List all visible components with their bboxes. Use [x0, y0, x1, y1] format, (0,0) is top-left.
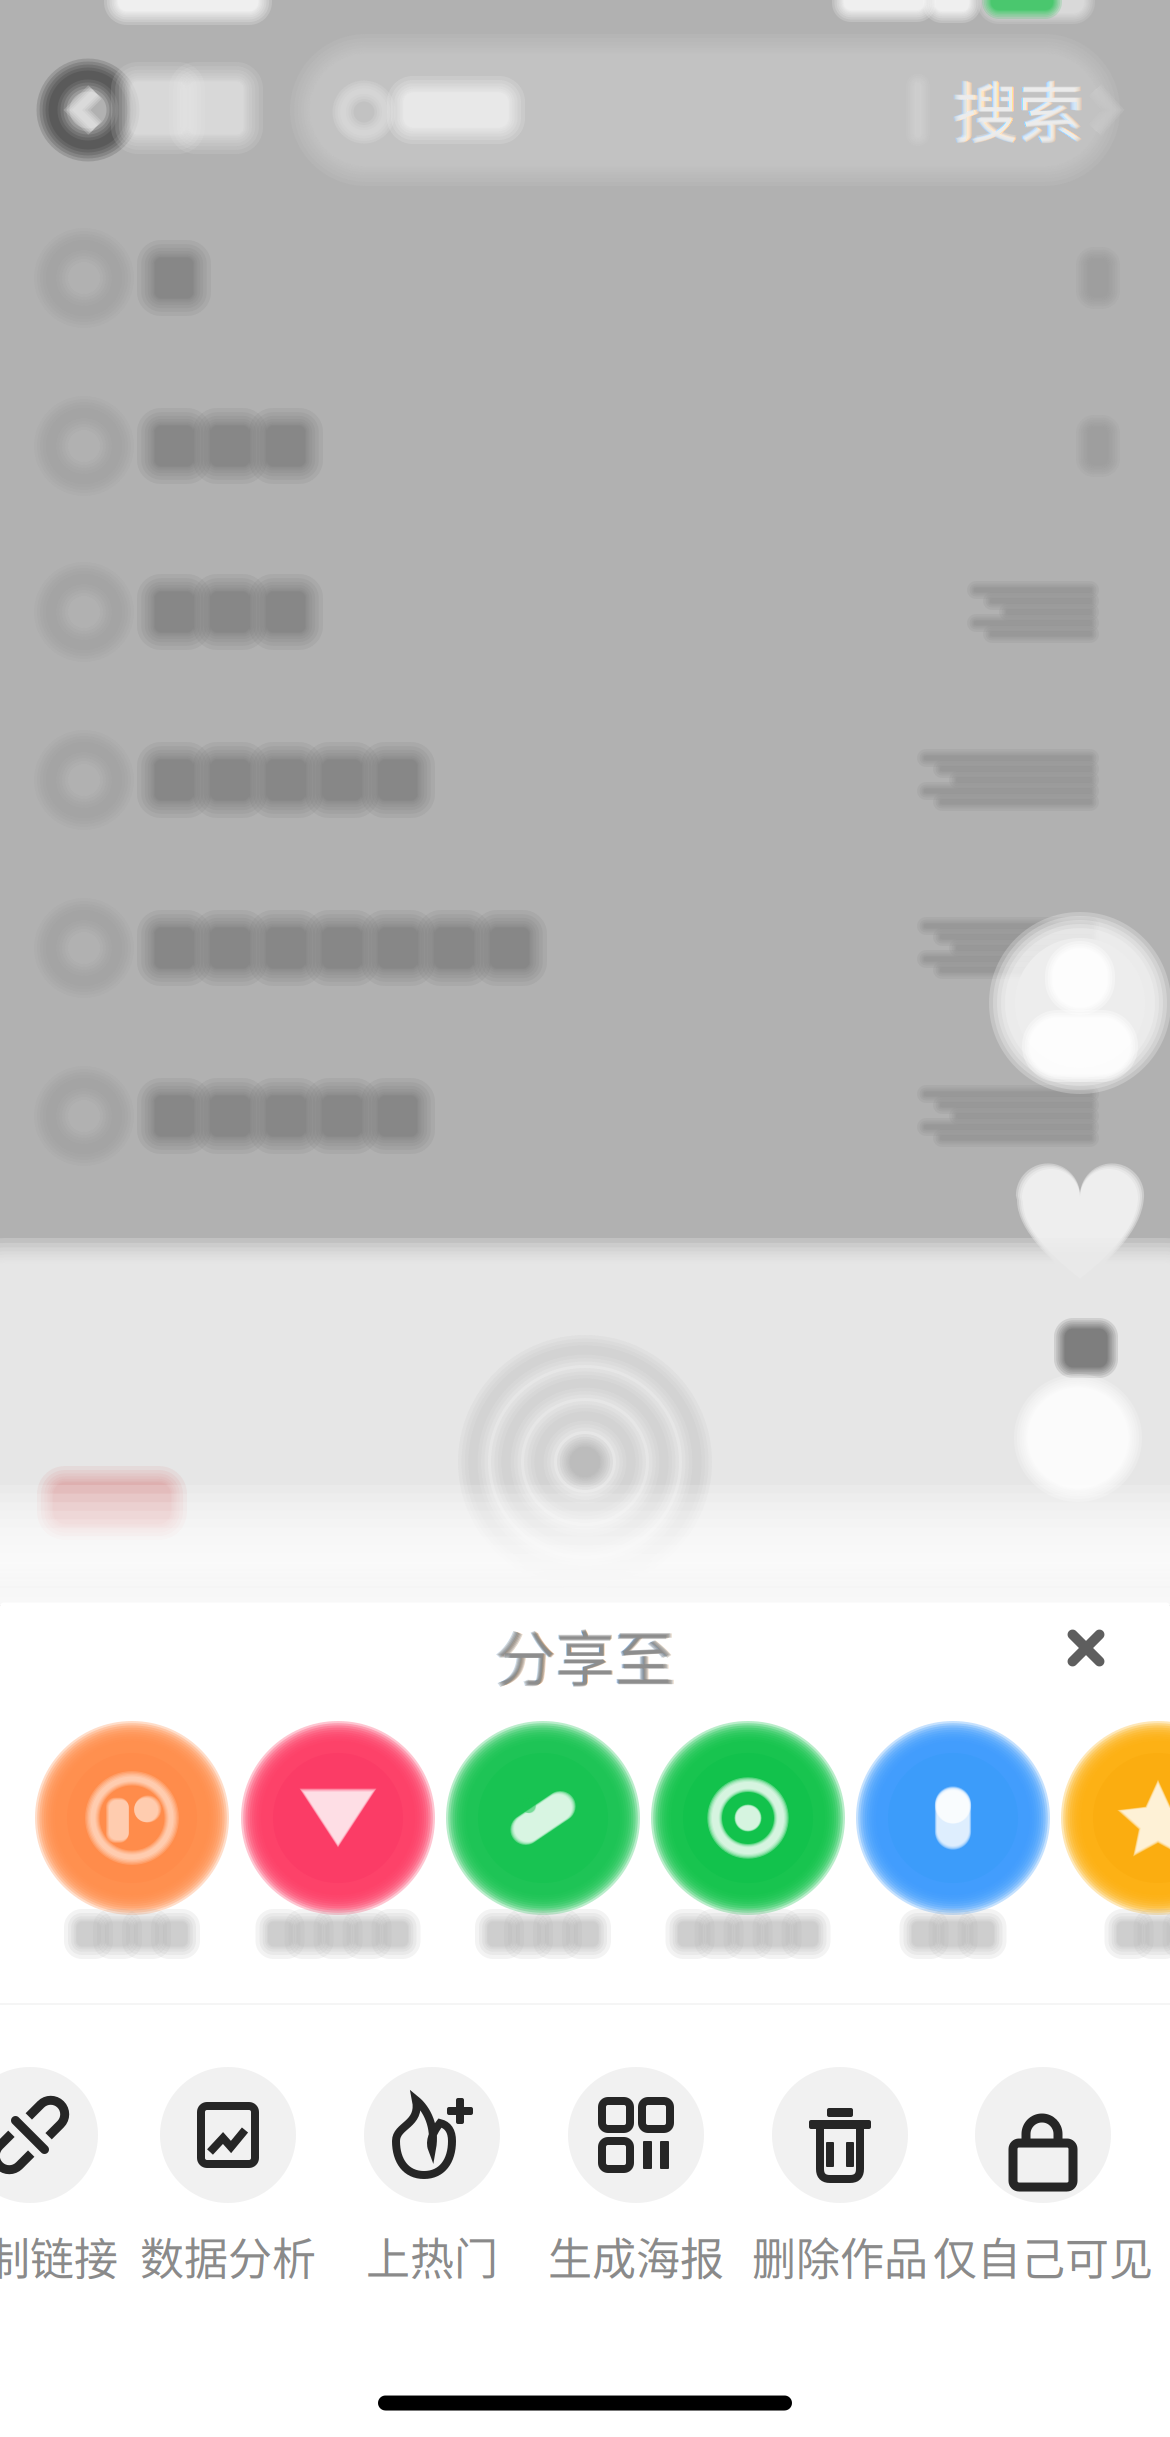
- staticText: 搜索: [957, 64, 1079, 152]
- staticText: 生成海报: [548, 2224, 724, 2288]
- staticText: 仅自己可见: [933, 2224, 1153, 2288]
- staticText: 搜索: [957, 64, 1079, 152]
- button[interactable]: 复制链接: [0, 2067, 145, 2279]
- button[interactable]: QQ好友: [853, 1738, 1053, 1988]
- button[interactable]: 上热门: [317, 2067, 547, 2279]
- staticText: 上热门: [366, 2224, 498, 2288]
- button[interactable]: QQ空间: [1058, 1738, 1170, 1988]
- button[interactable]: 生成海报: [521, 2067, 751, 2279]
- staticText: 搜索: [957, 64, 1079, 152]
- staticText: 分享至: [499, 1613, 670, 1696]
- button[interactable]: 抖音好友: [32, 1738, 232, 1988]
- staticText: 搜索: [957, 64, 1079, 152]
- button[interactable]: 分享到日常: [238, 1738, 438, 1988]
- staticText: 分享至: [499, 1613, 670, 1696]
- button[interactable]: 微信好友: [443, 1738, 643, 1988]
- staticText: 删除作品: [752, 2224, 928, 2288]
- button[interactable]: 微信朋友圈: [648, 1738, 848, 1988]
- button[interactable]: 仅自己可见: [928, 2067, 1158, 2279]
- button[interactable]: 关闭: [1031, 1593, 1141, 1703]
- staticText: 分享至: [499, 1613, 670, 1696]
- staticText: 搜索: [957, 64, 1079, 152]
- staticText: 复制链接: [0, 2224, 118, 2288]
- staticText: 分享至: [499, 1613, 670, 1696]
- staticText: 搜索: [957, 64, 1079, 152]
- staticText: 数据分析: [140, 2224, 316, 2288]
- staticText: 分享至: [499, 1613, 670, 1696]
- button[interactable]: 数据分析: [113, 2067, 343, 2279]
- button[interactable]: 删除作品: [725, 2067, 955, 2279]
